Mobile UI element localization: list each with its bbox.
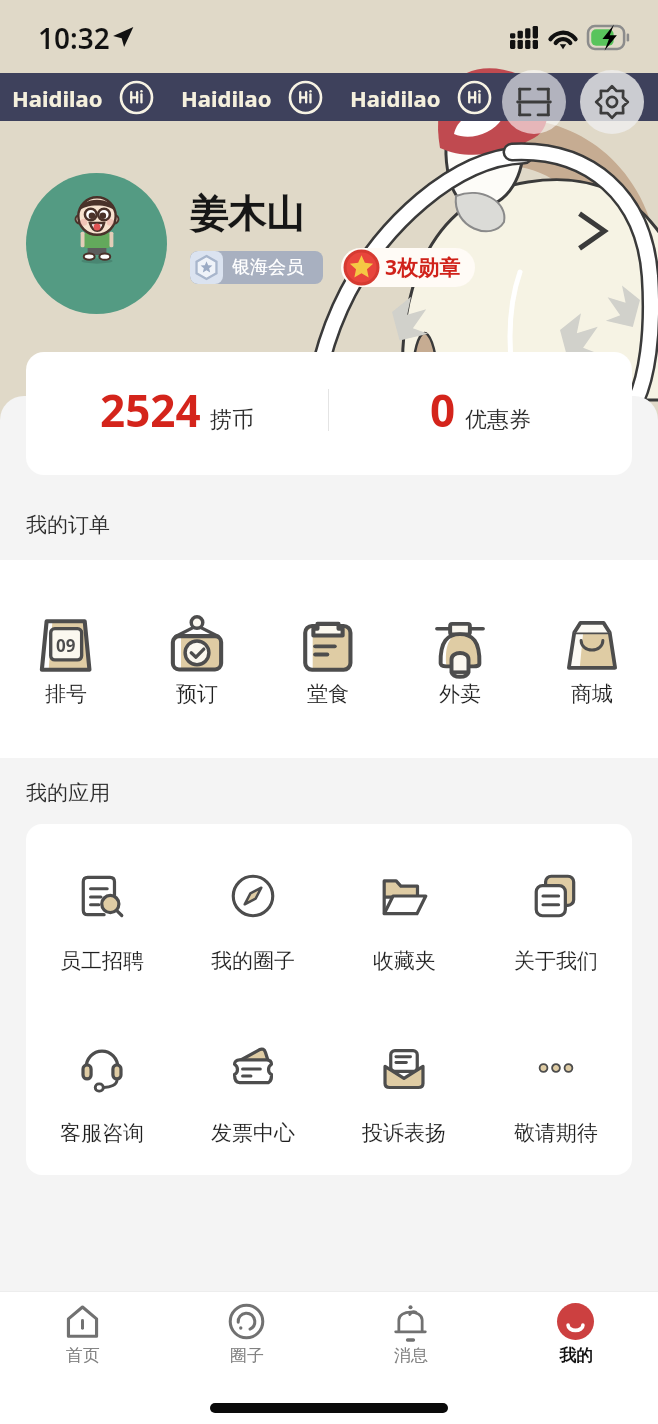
staticText: 优惠券 bbox=[465, 406, 531, 434]
staticText: 圈子 bbox=[230, 1345, 264, 1366]
staticText: 发票中心 bbox=[211, 1120, 295, 1146]
staticText: 外卖 bbox=[439, 681, 481, 707]
staticText: 3枚勋章 bbox=[385, 253, 461, 282]
staticText: 商城 bbox=[571, 681, 613, 707]
button[interactable]: 圈子 bbox=[164, 1292, 328, 1372]
button[interactable]: 关于我们 bbox=[480, 870, 632, 974]
button[interactable]: 敬请期待 bbox=[480, 1042, 632, 1146]
button[interactable]: 发票中心 bbox=[177, 1042, 328, 1146]
staticText: 收藏夹 bbox=[373, 948, 436, 974]
staticText: 关于我们 bbox=[514, 948, 598, 974]
staticText: 10:32 bbox=[38, 19, 110, 57]
staticText: 堂食 bbox=[307, 681, 349, 707]
staticText: 投诉表扬 bbox=[362, 1120, 446, 1146]
button[interactable]: 扫一扫 bbox=[502, 70, 566, 134]
button[interactable]: 3枚勋章 bbox=[341, 248, 475, 287]
staticText: 敬请期待 bbox=[514, 1120, 598, 1146]
staticText: Haidilao bbox=[12, 83, 103, 113]
staticText: 我的订单 bbox=[26, 512, 110, 538]
staticText: 0 bbox=[430, 380, 456, 440]
button[interactable]: 09 bbox=[0, 560, 131, 758]
staticText: 银海会员 bbox=[232, 256, 304, 279]
button[interactable]: 外卖 bbox=[394, 560, 526, 758]
staticText: Haidilao bbox=[350, 83, 441, 113]
staticText: 员工招聘 bbox=[60, 948, 144, 974]
staticText: 2524 bbox=[100, 380, 201, 440]
staticText: 09 bbox=[56, 634, 76, 657]
button[interactable]: 消息 bbox=[328, 1292, 493, 1372]
staticText: 消息 bbox=[394, 1345, 428, 1366]
button[interactable]: 我的圈子 bbox=[177, 870, 328, 974]
staticText: 姜木山 bbox=[190, 190, 304, 238]
button[interactable]: 首页 bbox=[0, 1292, 164, 1372]
staticText: 首页 bbox=[66, 1345, 100, 1366]
button[interactable]: 投诉表扬 bbox=[328, 1042, 480, 1146]
staticText: 捞币 bbox=[210, 406, 254, 434]
staticText: 我的圈子 bbox=[211, 948, 295, 974]
staticText: 排号 bbox=[45, 681, 87, 707]
button[interactable]: 银海会员 bbox=[190, 251, 323, 284]
button[interactable]: 我的 bbox=[493, 1292, 658, 1372]
staticText: 我的 bbox=[559, 1345, 593, 1366]
button[interactable]: 商城 bbox=[526, 560, 658, 758]
staticText: 客服咨询 bbox=[60, 1120, 144, 1146]
staticText: Haidilao bbox=[181, 83, 272, 113]
button[interactable]: 预订 bbox=[131, 560, 262, 758]
staticText: 我的应用 bbox=[26, 780, 110, 806]
staticText: 预订 bbox=[176, 681, 218, 707]
button[interactable]: 设置 bbox=[580, 70, 644, 134]
button[interactable]: 员工招聘 bbox=[26, 870, 177, 974]
button[interactable]: 2524 bbox=[26, 352, 632, 475]
button[interactable]: 收藏夹 bbox=[328, 870, 480, 974]
button[interactable]: 堂食 bbox=[262, 560, 394, 758]
button[interactable] bbox=[26, 173, 167, 314]
button[interactable]: 客服咨询 bbox=[26, 1042, 177, 1146]
